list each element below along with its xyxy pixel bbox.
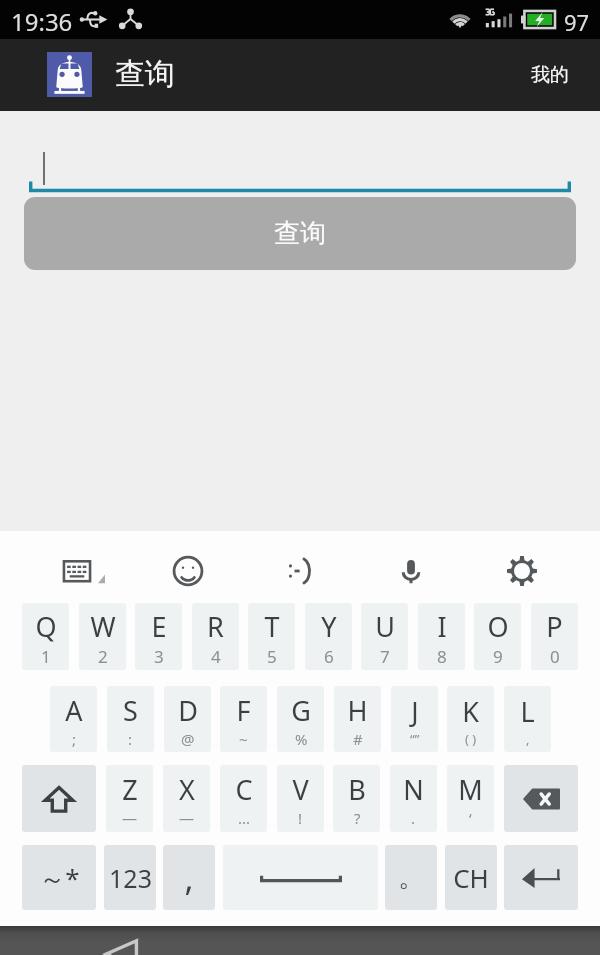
button[interactable]: Emoji: [160, 543, 216, 599]
button[interactable]: J: [391, 686, 438, 752]
button[interactable]: Shift: [22, 765, 96, 832]
button[interactable]: I: [418, 603, 465, 670]
staticText: ～*: [39, 860, 80, 896]
staticText: U: [375, 608, 395, 645]
staticText: D: [178, 692, 198, 729]
staticText: T: [264, 608, 280, 645]
staticText: @: [181, 729, 195, 749]
button[interactable]: Settings: [494, 543, 550, 599]
staticText: ‘: [469, 808, 472, 828]
staticText: 1: [41, 645, 51, 668]
staticText: 查询: [274, 217, 326, 250]
button[interactable]: W: [79, 603, 126, 670]
button[interactable]: D: [164, 686, 211, 752]
button[interactable]: E: [135, 603, 182, 670]
button[interactable]: M: [447, 765, 494, 832]
button[interactable]: N: [390, 765, 437, 832]
button[interactable]: Space: [223, 845, 378, 910]
staticText: P: [546, 608, 563, 645]
button[interactable]: Enter: [504, 845, 578, 910]
button[interactable]: CH: [445, 845, 497, 910]
staticText: 7: [380, 645, 390, 668]
button[interactable]: 。: [385, 845, 437, 910]
button[interactable]: App icon: [47, 52, 92, 97]
button[interactable]: X: [163, 765, 210, 832]
button[interactable]: A: [50, 686, 97, 752]
staticText: CH: [453, 860, 489, 895]
staticText: .: [411, 808, 416, 828]
button[interactable]: U: [361, 603, 408, 670]
staticText: 5: [267, 645, 277, 668]
staticText: F: [236, 692, 251, 729]
button[interactable]: C: [220, 765, 267, 832]
staticText: 3: [154, 645, 164, 668]
staticText: 2: [98, 645, 108, 668]
button[interactable]: R: [192, 603, 239, 670]
staticText: ?: [354, 808, 361, 828]
staticText: Q: [35, 608, 57, 645]
button[interactable]: ～*: [22, 845, 96, 910]
button[interactable]: Voice input: [383, 543, 439, 599]
button[interactable]: ,: [163, 845, 215, 910]
staticText: E: [151, 608, 167, 645]
button[interactable]: F: [220, 686, 267, 752]
button[interactable]: H: [334, 686, 381, 752]
other: Shift: [43, 783, 75, 815]
button[interactable]: 123: [104, 845, 156, 910]
staticText: I: [437, 608, 447, 645]
staticText: ,: [526, 730, 530, 748]
staticText: 97: [564, 7, 590, 37]
button[interactable]: G: [277, 686, 324, 752]
staticText: !: [298, 808, 303, 828]
button[interactable]: S: [107, 686, 154, 752]
staticText: Z: [122, 771, 138, 808]
button[interactable]: Z: [106, 765, 153, 832]
staticText: #: [353, 729, 363, 749]
staticText: M: [458, 771, 483, 808]
button[interactable]: L: [504, 686, 551, 752]
other: Backspace: [523, 788, 560, 810]
staticText: 6: [324, 645, 334, 668]
staticText: X: [179, 771, 195, 808]
staticText: 19:36: [11, 5, 73, 38]
staticText: R: [207, 608, 224, 645]
staticText: 9: [493, 645, 503, 668]
staticText: N: [403, 771, 424, 808]
staticText: Y: [321, 608, 337, 645]
button[interactable]: 我的: [509, 43, 600, 107]
staticText: W: [90, 608, 116, 645]
staticText: V: [292, 771, 309, 808]
staticText: J: [411, 693, 419, 730]
staticText: 查询: [115, 55, 175, 93]
button[interactable]: Q: [22, 603, 69, 670]
staticText: —: [179, 808, 195, 828]
staticText: O: [487, 608, 509, 645]
staticText: H: [347, 692, 368, 729]
staticText: 0: [550, 645, 560, 668]
button[interactable]: Y: [305, 603, 352, 670]
button[interactable]: K: [447, 686, 494, 752]
staticText: C: [235, 771, 253, 808]
button[interactable]: Backspace: [504, 765, 578, 832]
button[interactable]: T: [248, 603, 295, 670]
staticText: %: [295, 729, 308, 749]
button[interactable]: Back: [102, 939, 144, 955]
staticText: ;: [72, 729, 77, 749]
staticText: ~: [239, 729, 248, 749]
staticText: 4: [211, 645, 221, 668]
staticText: —: [122, 808, 138, 828]
button[interactable]: Emoticons: [272, 543, 328, 599]
staticText: 123: [109, 861, 152, 895]
button[interactable]: O: [474, 603, 521, 670]
button[interactable]: Keyboard layout: [49, 543, 105, 599]
staticText: 我的: [531, 63, 569, 87]
staticText: G: [291, 692, 311, 729]
staticText: 。: [398, 861, 424, 894]
staticText: B: [348, 771, 366, 808]
button[interactable]: 查询: [24, 197, 576, 270]
staticText: “”: [410, 730, 420, 748]
button[interactable]: P: [531, 603, 578, 670]
button[interactable]: V: [277, 765, 324, 832]
button[interactable]: B: [333, 765, 380, 832]
staticText: A: [65, 692, 83, 729]
